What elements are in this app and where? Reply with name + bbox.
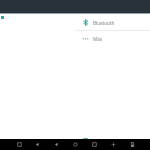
button[interactable]: Recents: [14, 139, 25, 150]
button[interactable]: Más: [75, 31, 150, 46]
button[interactable]: Back: [32, 139, 43, 150]
staticText: Bluetooth: [93, 20, 115, 26]
button[interactable]: Overview: [70, 139, 81, 150]
button[interactable]: Home: [51, 139, 62, 150]
button[interactable]: Bluetooth: [75, 15, 150, 30]
staticText: Más: [93, 36, 102, 42]
button[interactable]: Notifications: [108, 139, 119, 150]
button[interactable]: Apps: [89, 139, 100, 150]
button[interactable]: Battery: [127, 139, 138, 150]
